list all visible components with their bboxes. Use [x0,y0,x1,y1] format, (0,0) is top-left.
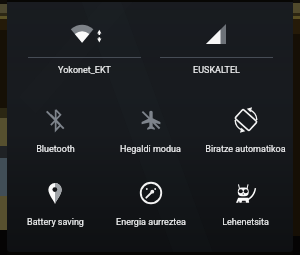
staticText: EUSKALTEL [193,65,240,76]
button[interactable]: Mobile signal [150,2,282,83]
button[interactable]: Energia aurreztea [103,156,198,229]
button[interactable]: Bluetooth [7,83,103,156]
staticText: Energia aurreztea [116,217,186,228]
button[interactable]: Biratze automatikoa [198,83,293,156]
button[interactable]: Lehenetsita [198,156,293,229]
staticText: Yokonet_EKT [58,65,111,76]
button[interactable]: Hegaldi modua [103,83,198,156]
button[interactable]: Wi-Fi [18,2,150,83]
staticText: Lehenetsita [222,217,269,228]
staticText: Battery saving [27,217,84,228]
staticText: Biratze automatikoa [205,144,286,155]
button[interactable]: Battery saving [7,156,103,229]
staticText: Bluetooth [36,144,75,155]
staticText: Hegaldi modua [120,144,181,155]
